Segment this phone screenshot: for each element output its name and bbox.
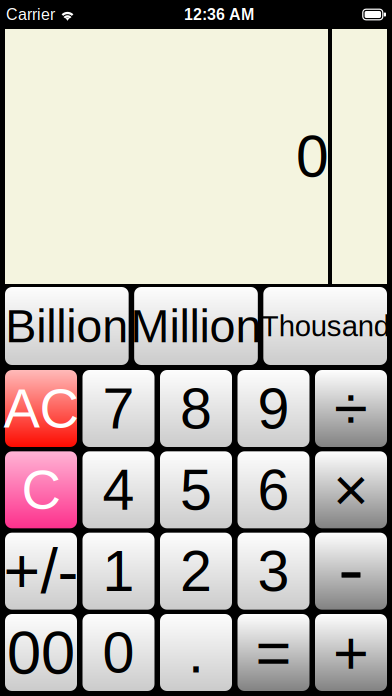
staticText: 9 [257, 376, 289, 441]
button[interactable]: +/- [5, 533, 77, 610]
button[interactable]: 7 [82, 370, 154, 447]
staticText: 00 [7, 618, 75, 687]
staticText: 12:36 AM [184, 6, 254, 23]
button[interactable]: ÷ [315, 370, 387, 447]
staticText: Billion [5, 300, 128, 352]
staticText: 6 [257, 458, 289, 522]
button[interactable]: 00 [5, 614, 77, 691]
button[interactable]: 0 [82, 614, 154, 691]
staticText: 3 [257, 539, 289, 603]
button[interactable]: 1 [82, 533, 154, 610]
staticText: = [255, 618, 291, 687]
staticText: ÷ [334, 374, 368, 443]
staticText: Thousand [261, 310, 390, 342]
staticText: 0 [296, 124, 329, 189]
button[interactable]: 2 [160, 533, 232, 610]
staticText: +/- [3, 536, 78, 606]
staticText: 4 [102, 458, 134, 522]
button[interactable]: Million [134, 287, 258, 365]
staticText: × [333, 456, 369, 524]
staticText: Carrier [6, 6, 55, 23]
button[interactable]: 5 [160, 451, 232, 528]
button[interactable]: 4 [82, 451, 154, 528]
button[interactable]: Thousand [263, 287, 387, 365]
button[interactable]: . [160, 614, 232, 691]
staticText: 0 [102, 620, 134, 685]
staticText: + [333, 618, 369, 687]
staticText: 8 [180, 376, 212, 441]
button[interactable]: 6 [237, 451, 309, 528]
button[interactable]: + [315, 614, 387, 691]
staticText: AC [3, 378, 78, 439]
button[interactable]: × [315, 451, 387, 528]
staticText: 7 [102, 376, 134, 441]
button[interactable]: 3 [237, 533, 309, 610]
button[interactable]: AC [5, 370, 77, 447]
staticText: 1 [102, 539, 134, 603]
staticText: Million [130, 300, 261, 352]
staticText: 5 [180, 458, 212, 522]
staticText: C [21, 459, 60, 520]
button[interactable]: = [237, 614, 309, 691]
button[interactable]: 9 [237, 370, 309, 447]
staticText: . [188, 620, 204, 685]
button[interactable]: C [5, 451, 77, 528]
staticText: 2 [180, 539, 212, 603]
button[interactable]: Billion [5, 287, 129, 365]
button[interactable]: Minus [315, 533, 387, 610]
button[interactable]: 8 [160, 370, 232, 447]
